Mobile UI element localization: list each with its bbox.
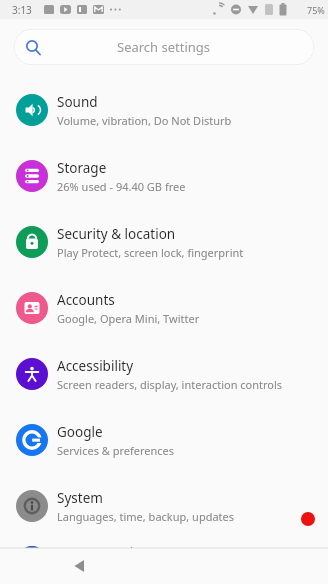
button[interactable]: Sound bbox=[0, 77, 328, 143]
button[interactable]: Security & location bbox=[0, 209, 328, 275]
staticText: 3:13 bbox=[12, 3, 32, 17]
button[interactable]: Google bbox=[0, 407, 328, 473]
staticText: Help articles, phone & chat, getting sta… bbox=[57, 564, 279, 579]
staticText: Sound bbox=[57, 93, 98, 111]
staticText: Languages, time, backup, updates bbox=[57, 509, 235, 524]
staticText: Play Protect, screen lock, fingerprint bbox=[57, 245, 244, 260]
button[interactable]: Search settings bbox=[14, 29, 314, 65]
button[interactable]: Accessibility bbox=[0, 341, 328, 407]
staticText: Services & preferences bbox=[57, 443, 175, 458]
staticText: System bbox=[57, 489, 103, 507]
staticText: Screen readers, display, interaction con… bbox=[57, 377, 283, 392]
staticText: 75% bbox=[307, 4, 325, 16]
staticText: Google bbox=[57, 423, 103, 441]
staticText: Volume, vibration, Do Not Disturb bbox=[57, 113, 232, 128]
staticText: Accounts bbox=[57, 291, 115, 309]
staticText: Google, Opera Mini, Twitter bbox=[57, 311, 200, 326]
button[interactable]: Accounts bbox=[0, 275, 328, 341]
staticText: Security & location bbox=[57, 225, 176, 243]
staticText: Search settings bbox=[117, 38, 211, 56]
staticText: Support & tips bbox=[57, 544, 149, 562]
button[interactable]: Storage bbox=[0, 143, 328, 209]
button[interactable]: Back bbox=[66, 552, 94, 580]
staticText: 26% used - 94.40 GB free bbox=[57, 179, 186, 194]
staticText: Storage bbox=[57, 159, 107, 177]
button[interactable]: System bbox=[0, 473, 328, 539]
staticText: Accessibility bbox=[57, 357, 134, 375]
button[interactable]: Support & tips bbox=[0, 539, 328, 584]
